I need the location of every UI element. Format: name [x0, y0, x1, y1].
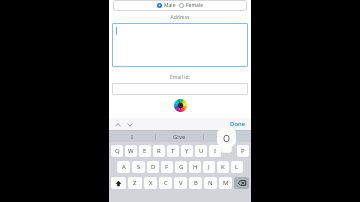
button[interactable]: K [217, 161, 229, 173]
button[interactable]: Give [156, 131, 203, 142]
button[interactable]: B [189, 177, 202, 189]
staticText: P [241, 147, 245, 155]
button[interactable]: Previous field [113, 120, 122, 129]
staticText: C [164, 179, 168, 187]
staticText: Male [164, 2, 176, 9]
staticText: Email id: [109, 74, 251, 81]
button[interactable]: X [144, 177, 157, 189]
button[interactable]: J [203, 161, 215, 173]
staticText: F [165, 163, 169, 171]
staticText: V [179, 179, 183, 187]
button[interactable]: Next field [125, 120, 134, 129]
button[interactable]: L [231, 161, 243, 173]
button[interactable]: Shift [111, 177, 126, 189]
button[interactable]: A [117, 161, 130, 173]
staticText: X [149, 179, 153, 187]
staticText: E [143, 147, 147, 155]
staticText: T [171, 147, 175, 155]
button[interactable]: I [109, 131, 155, 142]
button[interactable]: F [161, 161, 173, 173]
button[interactable]: Male [113, 0, 247, 11]
staticText: Q [115, 147, 120, 155]
button[interactable]: D [147, 161, 159, 173]
button[interactable]: C [159, 177, 172, 189]
staticText: Y [185, 147, 189, 155]
staticText: Done [230, 120, 246, 128]
staticText: G [179, 163, 184, 171]
button[interactable]: Done [229, 120, 247, 128]
button[interactable]: W [125, 145, 137, 157]
button[interactable]: R [153, 145, 165, 157]
button[interactable]: P [237, 145, 249, 157]
button[interactable]: V [174, 177, 187, 189]
button[interactable]: H [189, 161, 201, 173]
button[interactable]: Q [111, 145, 123, 157]
staticText: J [208, 163, 210, 171]
staticText: N [208, 179, 213, 187]
button[interactable]: I [209, 145, 221, 157]
button[interactable]: N [204, 177, 217, 189]
button[interactable]: T [167, 145, 179, 157]
button[interactable] [112, 23, 248, 67]
button[interactable]: O [217, 128, 236, 154]
button[interactable]: U [195, 145, 207, 157]
staticText: I [131, 133, 134, 141]
button[interactable]: E [139, 145, 151, 157]
staticText: I [214, 147, 217, 155]
staticText: Female [186, 2, 204, 9]
staticText: A [122, 163, 126, 171]
button[interactable]: M [219, 177, 232, 189]
button[interactable]: G [175, 161, 187, 173]
button[interactable]: Backspace [234, 177, 249, 189]
staticText: Give [173, 133, 186, 141]
staticText: U [199, 147, 204, 155]
staticText: L [235, 163, 239, 171]
button[interactable]: Y [181, 145, 193, 157]
staticText: D [151, 163, 156, 171]
staticText: K [221, 163, 225, 171]
button[interactable]: S [132, 161, 145, 173]
staticText: Z [133, 179, 137, 187]
button[interactable] [112, 83, 248, 95]
staticText: W [128, 147, 134, 155]
staticText: R [157, 147, 161, 155]
staticText: O [223, 132, 231, 144]
staticText: S [137, 163, 141, 171]
staticText: Address [109, 14, 251, 21]
staticText: M [223, 179, 229, 187]
staticText: B [194, 179, 198, 187]
button[interactable]: Z [128, 177, 142, 189]
staticText: H [193, 163, 198, 171]
